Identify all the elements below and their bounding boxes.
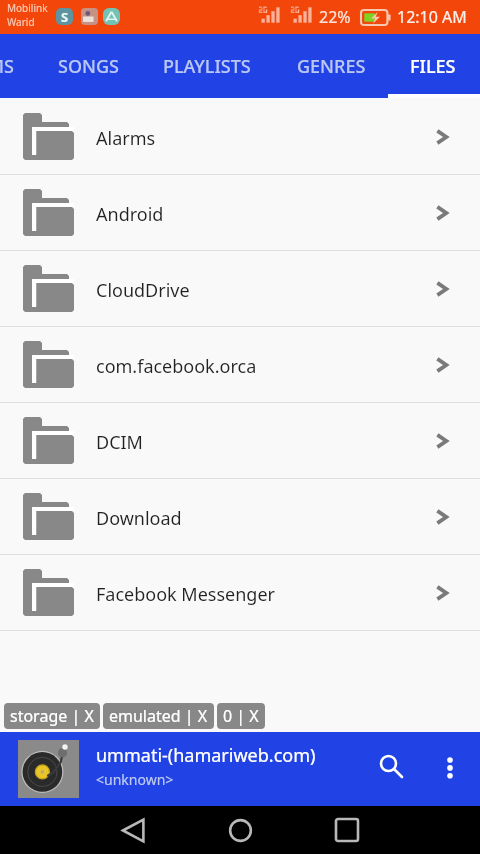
staticText: Alarms [96,126,156,151]
staticText: storage | X [10,705,94,727]
staticText: 22% [319,6,351,28]
button[interactable]: ALBUMS [0,34,19,98]
staticText: 0 | X [223,705,259,727]
button[interactable]: emulated | X [103,703,214,729]
staticText: S [61,8,69,25]
button[interactable]: PLAYLISTS [163,34,256,98]
button[interactable]: ummati-(hamariweb.com) [0,732,480,806]
staticText: emulated | X [109,705,208,727]
button[interactable]: Search [367,742,415,790]
staticText: Warid [7,15,35,29]
staticText: SONGS [58,54,119,79]
button[interactable]: Android [0,175,480,250]
staticText: Download [96,506,182,531]
staticText: ALBUMS [0,54,14,79]
button[interactable]: More options [429,746,471,788]
button[interactable]: CloudDrive [0,251,480,326]
staticText: FILES [410,54,456,79]
staticText: com.facebook.orca [96,354,257,379]
button[interactable]: 0 | X [217,703,265,729]
staticText: CloudDrive [96,278,190,303]
button[interactable]: Home [216,806,264,854]
button[interactable]: Facebook Messenger [0,555,480,630]
staticText: Facebook Messenger [96,582,276,607]
staticText: Android [96,202,164,227]
staticText: <unknown> [96,770,174,789]
staticText: ummati-(hamariweb.com) [96,743,316,768]
button[interactable]: DCIM [0,403,480,478]
staticText: PLAYLISTS [163,54,251,79]
button[interactable]: Back [109,806,157,854]
button[interactable]: Download [0,479,480,554]
button[interactable]: storage | X [4,703,100,729]
staticText: Mobilink [7,1,48,15]
button[interactable]: SONGS [58,34,120,98]
staticText: 12:10 AM [397,6,467,28]
button[interactable]: FILES [410,34,462,98]
button[interactable]: com.facebook.orca [0,327,480,402]
staticText: GENRES [297,54,366,79]
staticText: DCIM [96,430,143,455]
button[interactable]: Recents [323,806,371,854]
button[interactable]: Alarms [0,99,480,174]
button[interactable]: GENRES [297,34,370,98]
